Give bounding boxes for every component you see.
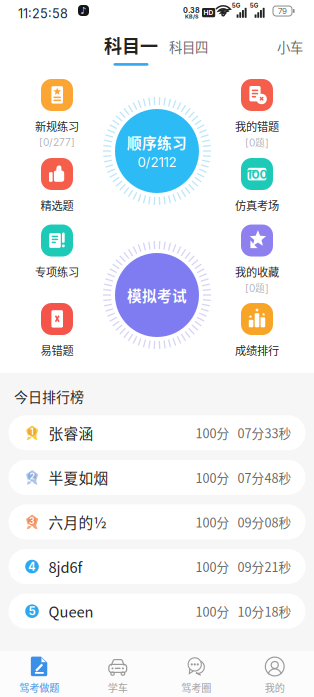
staticText: 科目一 — [104, 32, 158, 58]
staticText: 100分 — [195, 468, 229, 486]
button[interactable]: 5 — [8, 594, 305, 629]
staticText: 100分 — [195, 602, 229, 620]
button[interactable]: 模拟考试 — [102, 240, 212, 350]
staticText: 我的 — [265, 680, 285, 695]
button[interactable]: 驾考做题 — [0, 651, 78, 697]
staticText: KB/S — [185, 13, 198, 20]
staticText: 4 — [28, 560, 36, 573]
staticText: 10分18秒 — [237, 602, 291, 620]
staticText: 3 — [29, 516, 35, 526]
staticText: 易错题 — [40, 342, 73, 358]
staticText: 100分 — [195, 513, 229, 531]
staticText: [0/277] — [39, 136, 75, 148]
staticText: [0题] — [245, 136, 269, 149]
staticText: 新规练习 — [35, 118, 79, 134]
staticText: 半夏如烟 — [48, 467, 108, 488]
staticText: 5G — [232, 2, 241, 9]
staticText: 专项练习 — [35, 263, 79, 280]
button[interactable]: 我的收藏 — [219, 224, 295, 303]
button[interactable]: 成绩排行 — [219, 303, 295, 353]
staticText: 2 — [29, 471, 34, 481]
staticText: 模拟考试 — [127, 284, 187, 306]
staticText: 11:25:58 — [18, 6, 68, 21]
staticText: 驾考做题 — [19, 680, 59, 695]
button[interactable]: 我的 — [235, 651, 314, 697]
staticText: 09分08秒 — [237, 513, 291, 531]
staticText: 100分 — [195, 557, 229, 576]
button[interactable]: 我的错题 — [219, 79, 295, 158]
staticText: 顺序练习 — [127, 132, 187, 153]
staticText: 8jd6f — [48, 556, 82, 577]
staticText: 今日排行榜 — [14, 386, 84, 406]
button[interactable]: 专项练习 — [19, 224, 95, 303]
button[interactable]: 顺序练习 — [102, 96, 212, 206]
staticText: 5 — [28, 604, 35, 618]
button[interactable]: 100 — [219, 158, 295, 224]
staticText: 科目四 — [169, 37, 208, 56]
button[interactable]: 4 — [8, 549, 305, 584]
staticText: 0/2112 — [137, 154, 176, 170]
button[interactable]: 驾考圈 — [157, 651, 235, 697]
staticText: 79 — [278, 6, 287, 16]
staticText: 我的错题 — [235, 118, 279, 134]
staticText: 1 — [30, 426, 34, 437]
staticText: ♪ — [80, 5, 86, 16]
staticText: 小车 — [277, 37, 303, 56]
staticText: 我的收藏 — [235, 263, 279, 280]
staticText: HD — [204, 9, 214, 17]
button[interactable]: 2 — [8, 460, 305, 495]
staticText: 驾考圈 — [181, 680, 211, 695]
staticText: 5G — [250, 2, 259, 9]
staticText: 精选题 — [40, 197, 73, 213]
button[interactable]: 学车 — [78, 651, 157, 697]
staticText: [0题] — [245, 282, 269, 294]
button[interactable]: 3 — [8, 504, 305, 539]
button[interactable]: 科目四 — [0, 32, 208, 56]
staticText: 07分48秒 — [237, 468, 291, 486]
staticText: 09分21秒 — [237, 557, 291, 576]
button[interactable]: 小车 — [0, 32, 303, 56]
button[interactable]: 精选题 — [19, 158, 95, 224]
staticText: 100分 — [195, 424, 229, 442]
staticText: 学车 — [108, 680, 128, 695]
button[interactable]: 易错题 — [19, 303, 95, 353]
button[interactable]: 新规练习 — [19, 79, 95, 158]
button[interactable]: 科目一 — [0, 32, 158, 70]
staticText: 100 — [246, 167, 267, 182]
staticText: 0.38 — [183, 6, 200, 15]
staticText: Queen — [48, 601, 93, 622]
staticText: 成绩排行 — [235, 342, 279, 358]
staticText: 07分33秒 — [237, 424, 291, 442]
staticText: 六月的½ — [48, 511, 106, 533]
staticText: 张睿涵 — [48, 422, 93, 443]
staticText: 仿真考场 — [235, 197, 279, 213]
button[interactable]: 1 — [8, 415, 305, 450]
